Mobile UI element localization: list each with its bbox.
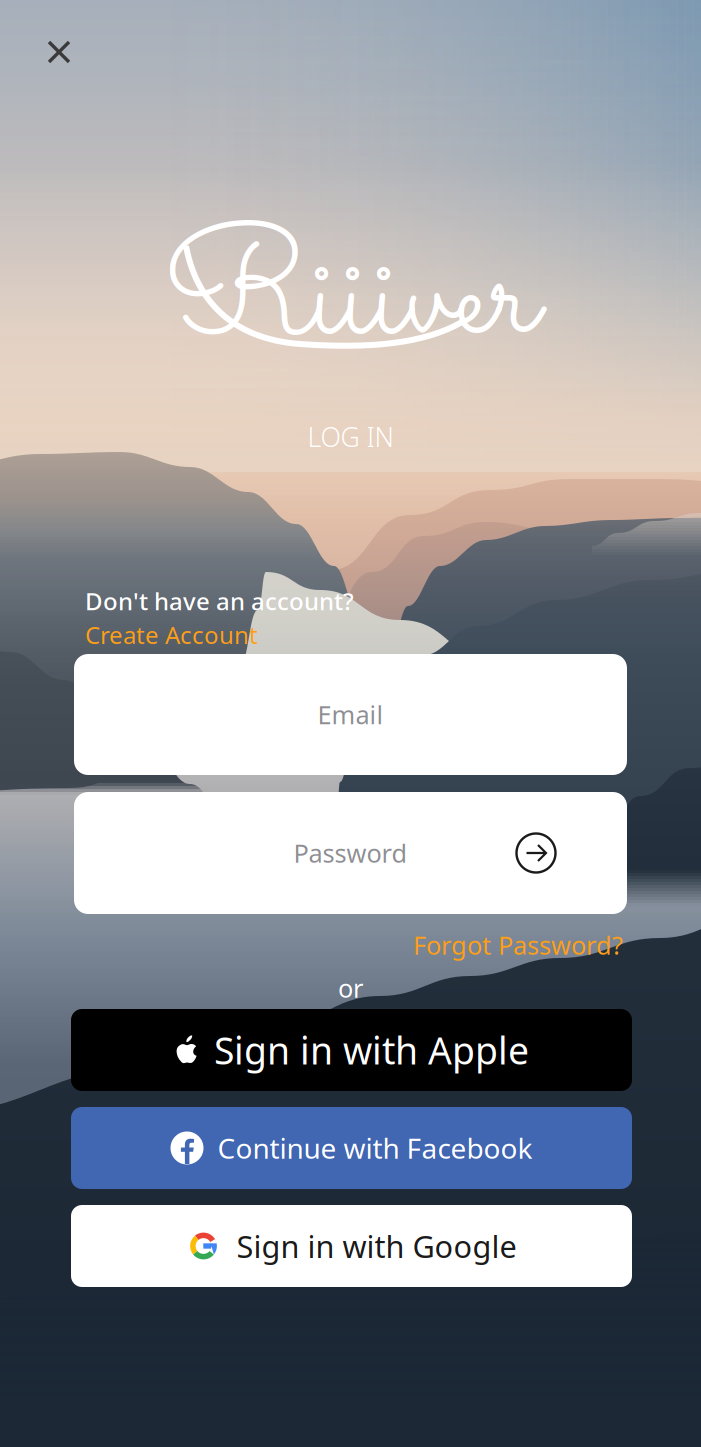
button[interactable]: Sign in with Google (71, 1205, 632, 1287)
staticText: Continue with Facebook (217, 1129, 532, 1167)
staticText: Email (317, 698, 383, 731)
staticText: Create Account (85, 619, 258, 651)
button[interactable]: Submit (512, 829, 560, 877)
button[interactable]: Sign in with Apple (71, 1009, 632, 1091)
button[interactable]: Close (37, 30, 81, 74)
staticText: Password (293, 836, 407, 870)
staticText: Riiiver (162, 192, 538, 410)
staticText: LOG IN (307, 419, 393, 454)
staticText: Sign in with Google (236, 1226, 516, 1266)
staticText: or (338, 971, 363, 1005)
staticText: Sign in with Apple (214, 1025, 529, 1075)
button[interactable]: Email (74, 654, 627, 775)
staticText: Forgot Password? (413, 928, 623, 962)
button[interactable]: Create Account (85, 619, 258, 651)
button[interactable]: Password (74, 792, 627, 914)
button[interactable]: Forgot Password? (413, 928, 623, 962)
staticText: Don't have an account? (85, 585, 354, 617)
button[interactable]: Continue with Facebook (71, 1107, 632, 1189)
